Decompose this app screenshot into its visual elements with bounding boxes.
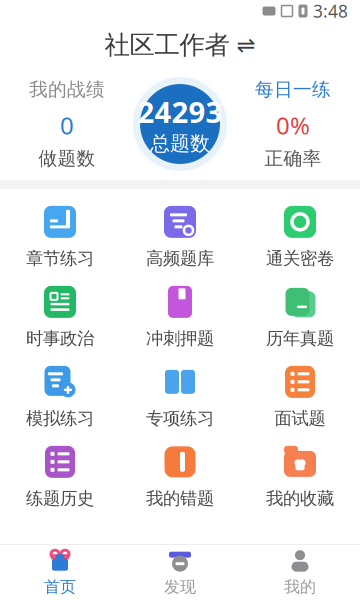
staticText: 练题历史 — [26, 488, 94, 509]
staticText: 历年真题 — [266, 328, 334, 349]
staticText: 0% — [276, 109, 310, 141]
staticText: 24293 — [137, 92, 222, 131]
button[interactable]: 我的错题 — [120, 437, 240, 517]
button[interactable]: 练题历史 — [0, 437, 120, 517]
button[interactable]: 面试题 — [240, 357, 360, 437]
staticText: 总题数 — [150, 131, 210, 156]
staticText: 0 — [60, 109, 74, 141]
staticText: 3:48 — [313, 0, 348, 22]
staticText: 面试题 — [274, 408, 325, 429]
staticText: 我的错题 — [146, 488, 214, 509]
button[interactable]: 我的收藏 — [240, 437, 360, 517]
button[interactable]: 章节练习 — [0, 197, 120, 277]
button[interactable]: 每日一练 — [255, 78, 331, 101]
staticText: 发现 — [164, 577, 196, 597]
staticText: 模拟练习 — [26, 408, 94, 429]
staticText: 首页 — [44, 577, 76, 597]
button[interactable]: 模拟练习 — [0, 357, 120, 437]
button[interactable]: 我的 — [240, 542, 360, 600]
button[interactable]: 历年真题 — [240, 277, 360, 357]
button[interactable]: 冲刺押题 — [120, 277, 240, 357]
staticText: 每日一练 — [255, 78, 331, 101]
staticText: 专项练习 — [146, 408, 214, 429]
button[interactable]: 首页 — [0, 542, 120, 600]
button[interactable]: 通关密卷 — [240, 197, 360, 277]
staticText: ⇌ — [236, 32, 255, 58]
staticText: 做题数 — [38, 147, 95, 170]
staticText: 社区工作者 — [104, 29, 229, 60]
staticText: 正确率 — [264, 147, 321, 170]
staticText: 时事政治 — [26, 328, 94, 349]
staticText: 我的 — [284, 577, 316, 597]
staticText: 章节练习 — [26, 248, 94, 269]
staticText: 我的战绩 — [29, 78, 105, 101]
staticText: 通关密卷 — [266, 248, 334, 269]
staticText: 冲刺押题 — [146, 328, 214, 349]
staticText: 我的收藏 — [266, 488, 334, 509]
button[interactable]: 发现 — [120, 542, 240, 600]
staticText: 高频题库 — [146, 248, 214, 269]
button[interactable]: 专项练习 — [120, 357, 240, 437]
button[interactable]: 社区工作者 — [104, 19, 255, 70]
button[interactable]: 时事政治 — [0, 277, 120, 357]
button[interactable]: 高频题库 — [120, 197, 240, 277]
